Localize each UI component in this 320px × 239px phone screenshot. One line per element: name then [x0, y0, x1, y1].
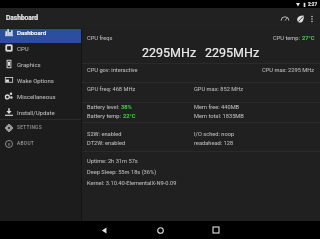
staticText: CPU: [17, 45, 29, 52]
button[interactable]: ABOUT: [0, 136, 81, 152]
staticText: 27°C: [302, 35, 315, 42]
staticText: Dashboard: [17, 29, 47, 36]
staticText: 2:27: [308, 2, 318, 7]
staticText: Battery temp:: [87, 113, 123, 120]
button[interactable]: Install/Update: [0, 104, 81, 120]
button[interactable]: SETTINGS: [0, 120, 81, 136]
staticText: Deep Sleep: 55m 18s (36%): [87, 169, 157, 176]
staticText: CPU gov: interactive: [87, 67, 138, 74]
staticText: SETTINGS: [17, 125, 42, 131]
staticText: 2295MHz: [142, 45, 197, 60]
staticText: Miscellaneous: [17, 93, 56, 100]
button[interactable]: Home: [146, 221, 174, 239]
staticText: 22°C: [123, 113, 136, 120]
staticText: Kernel: 3.10.40-ElementalX-N9-0.09: [87, 180, 177, 187]
staticText: Mem free: 440MB: [194, 104, 240, 111]
staticText: Mem total: 1835MB: [194, 113, 244, 120]
staticText: GPU freq: 468 MHz: [87, 86, 136, 93]
staticText: CPU freqs: [87, 35, 113, 42]
staticText: ABOUT: [17, 141, 35, 147]
staticText: Graphics: [17, 61, 41, 68]
staticText: 38%: [121, 104, 132, 111]
button[interactable]: Wake Options: [0, 72, 81, 88]
staticText: 2295MHz: [205, 45, 260, 60]
staticText: Uptime: 2h 31m 57s: [87, 158, 138, 165]
staticText: DT2W: enabled: [87, 140, 126, 147]
button[interactable]: Battery saver: [292, 11, 307, 26]
staticText: Install/Update: [17, 109, 55, 116]
button[interactable]: CPU: [0, 40, 81, 56]
staticText: CPU temp:: [273, 35, 302, 42]
staticText: I/O sched: noop: [194, 131, 235, 138]
button[interactable]: Graphics: [0, 56, 81, 72]
staticText: Battery level:: [87, 104, 121, 111]
button[interactable]: Recent apps: [202, 221, 230, 239]
staticText: GPU max: 852 MHz: [194, 86, 244, 93]
button[interactable]: Back: [90, 221, 118, 239]
staticText: readahead: 128: [194, 140, 234, 147]
button[interactable]: Dashboard: [0, 24, 81, 40]
staticText: S2W: enabled: [87, 131, 122, 138]
staticText: Wake Options: [17, 77, 54, 84]
button[interactable]: Performance profile: [278, 12, 292, 26]
staticText: CPU max: 2295 MHz: [262, 67, 315, 74]
button[interactable]: More options: [305, 12, 318, 25]
button[interactable]: Miscellaneous: [0, 88, 81, 104]
staticText: Dashboard: [6, 14, 38, 22]
